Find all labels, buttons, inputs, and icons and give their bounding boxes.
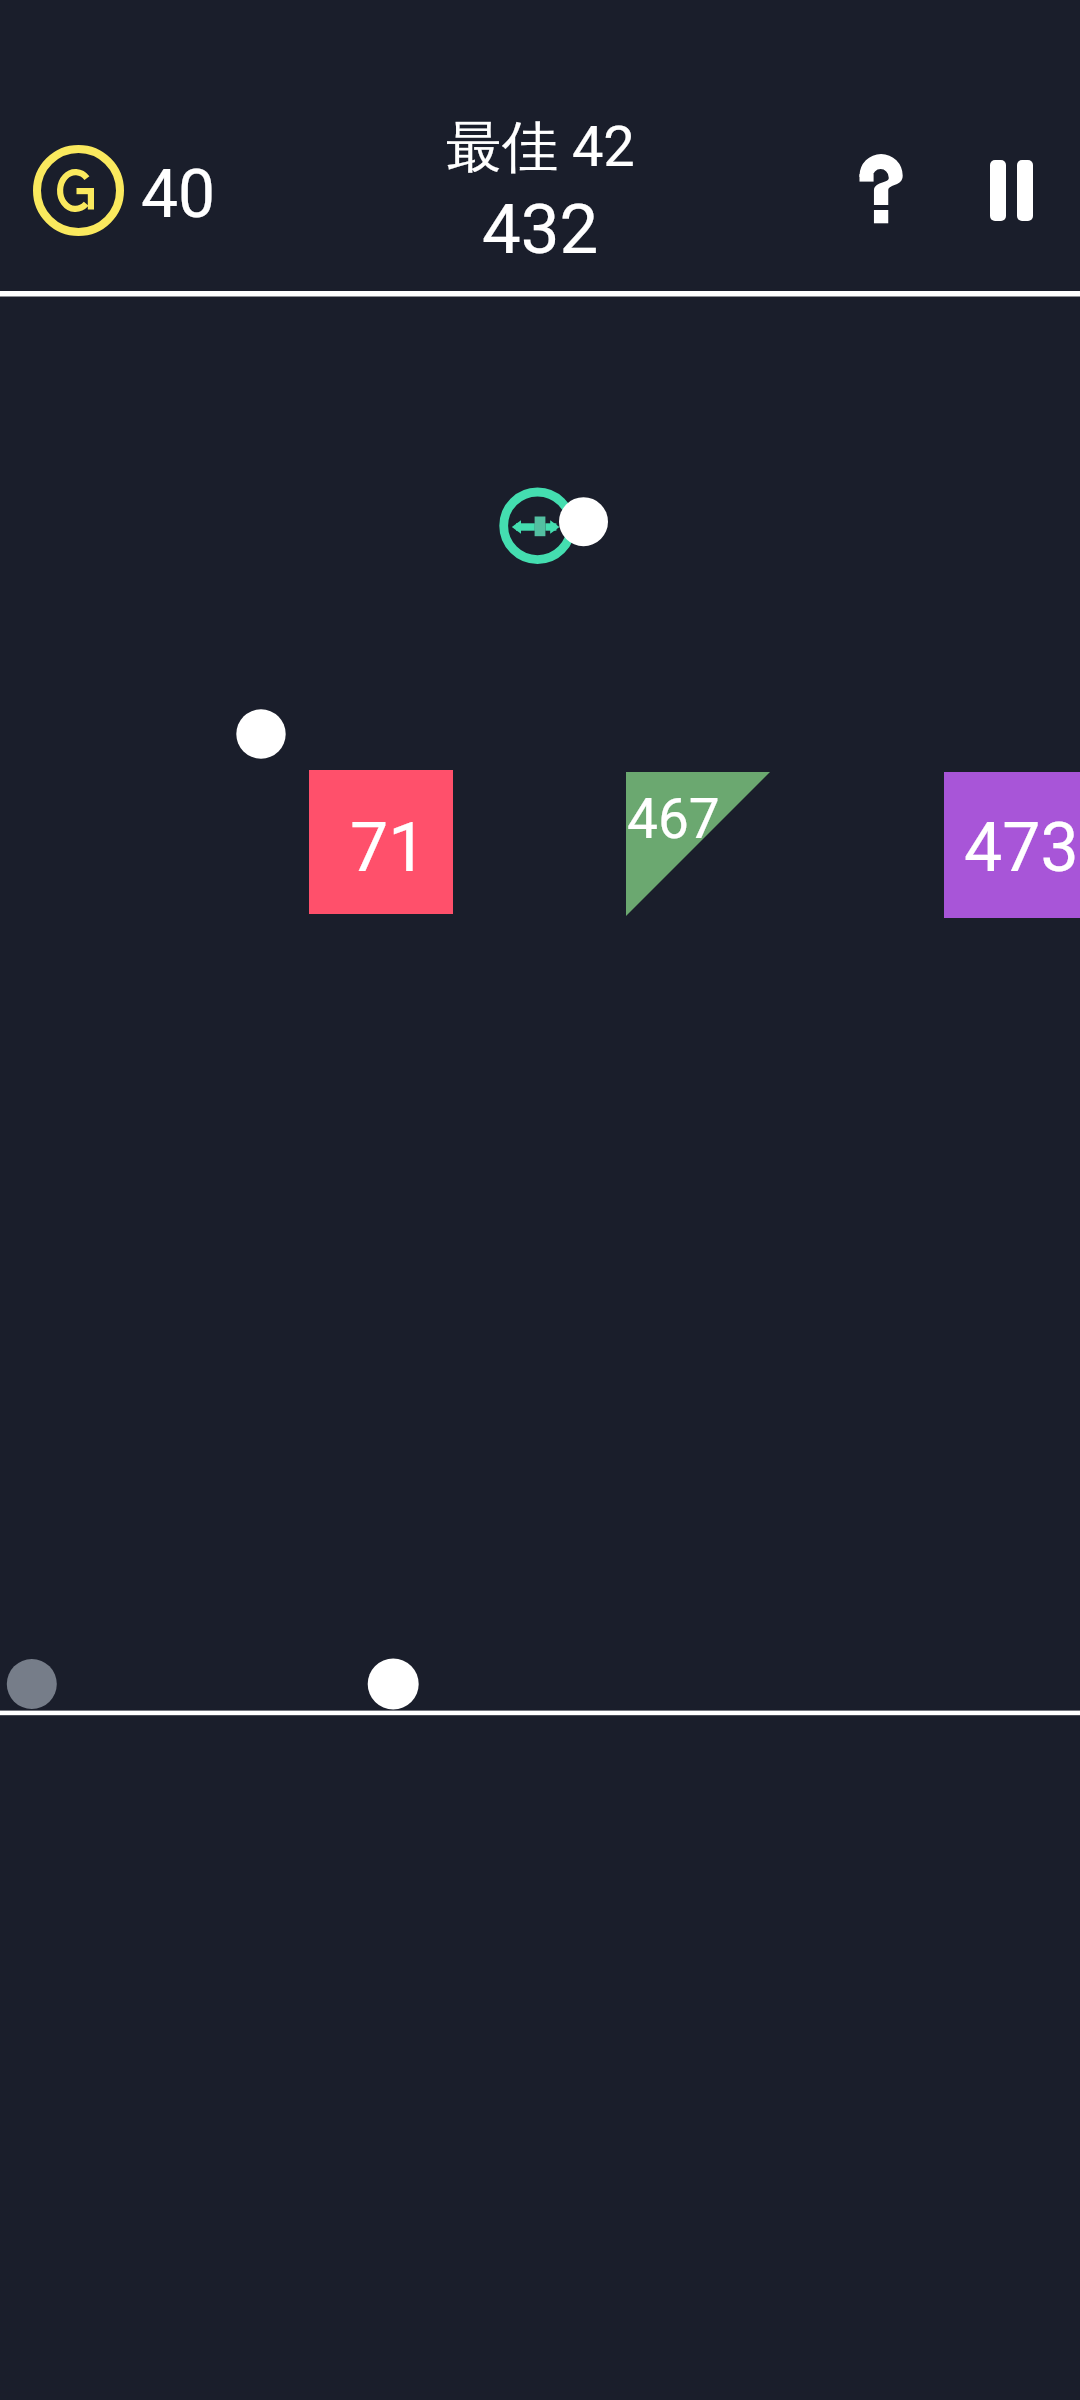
button[interactable]: Pause [921, 108, 1033, 220]
button[interactable]: 40 [20, 132, 230, 250]
staticText: 432 [482, 189, 599, 270]
staticText: 71 [350, 808, 427, 888]
staticText: 最佳 42 [446, 112, 635, 183]
button[interactable]: Help [825, 132, 937, 244]
button[interactable]: Playfield, tap to aim [0, 296, 1080, 1711]
staticText: 473 [964, 808, 1079, 888]
staticText: 467 [627, 787, 720, 851]
staticText: 40 [141, 156, 216, 233]
